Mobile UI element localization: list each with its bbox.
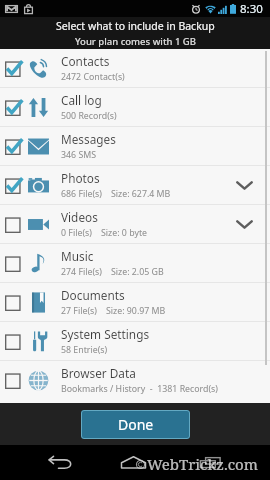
staticText: Photos (61, 170, 100, 186)
staticText: Contacts (61, 53, 110, 69)
staticText: Call log (61, 92, 102, 108)
staticText: Music (61, 248, 94, 264)
button[interactable]: Expand (229, 166, 259, 204)
staticText: Browser Data (61, 365, 136, 381)
button[interactable]: Back (33, 445, 88, 480)
button[interactable]: Call log (0, 88, 270, 126)
button[interactable]: Contacts (0, 49, 270, 87)
staticText: Bookmarks / History - 1381 Record(s) (61, 383, 218, 395)
staticText: WebTrickz.com (147, 454, 258, 474)
button[interactable]: Recent apps (182, 445, 237, 480)
button[interactable]: Home (106, 445, 161, 480)
staticText: 500 Record(s) (61, 110, 117, 122)
button[interactable]: Messages (0, 127, 270, 165)
button[interactable]: Music (0, 244, 270, 282)
button[interactable]: Documents (0, 283, 270, 321)
staticText: Size: 0 byte (101, 227, 148, 239)
staticText: 58 Entrie(s) (61, 344, 108, 356)
staticText: Documents (61, 287, 125, 303)
staticText: Size: 90.97 MB (106, 305, 166, 317)
staticText: Done (118, 415, 154, 434)
staticText: Videos (61, 209, 98, 225)
staticText: 27 File(s) (61, 305, 97, 317)
staticText: 274 File(s) (61, 266, 102, 278)
button[interactable]: Done (81, 410, 190, 439)
staticText: 2472 Contact(s) (61, 71, 125, 83)
staticText: Messages (61, 131, 116, 147)
button[interactable]: System Settings (0, 322, 270, 360)
staticText: Select what to include in Backup (56, 19, 215, 33)
button[interactable]: Browser Data (0, 361, 270, 399)
staticText: 346 SMS (61, 149, 97, 161)
staticText: Size: 627.4 MB (111, 188, 171, 200)
staticText: System Settings (61, 326, 150, 342)
staticText: Your plan comes with 1 GB (75, 35, 196, 48)
staticText: 0 File(s) (61, 227, 92, 239)
staticText: Size: 2.05 GB (111, 266, 164, 278)
button[interactable]: Videos (0, 205, 270, 243)
staticText: 686 File(s) (61, 188, 102, 200)
button[interactable]: Photos (0, 166, 270, 204)
staticText: 8:30 (240, 1, 263, 17)
button[interactable]: Expand (229, 205, 259, 243)
